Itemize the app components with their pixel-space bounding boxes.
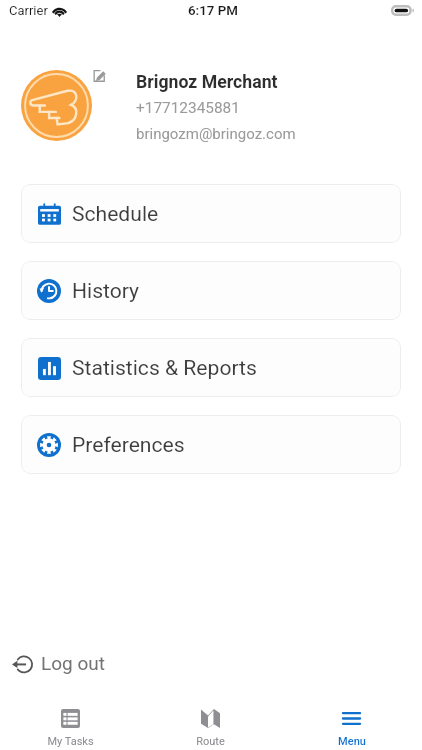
staticText: Brignoz Merchant (136, 72, 278, 93)
staticText: 6:17 PM (188, 3, 238, 19)
button[interactable]: Schedule (21, 184, 401, 243)
button[interactable]: My Tasks (0, 688, 140, 750)
button[interactable]: Menu (281, 688, 422, 750)
staticText: Schedule (72, 201, 159, 226)
button[interactable]: Statistics & Reports (21, 338, 401, 397)
button[interactable]: History (21, 261, 401, 320)
staticText: Route (196, 735, 225, 748)
staticText: Preferences (72, 432, 185, 457)
button[interactable]: Log out (0, 643, 422, 683)
staticText: My Tasks (47, 735, 94, 748)
staticText: Menu (338, 735, 366, 748)
staticText: Carrier (9, 3, 48, 18)
button[interactable]: Edit profile (92, 69, 106, 83)
button[interactable]: Route (140, 688, 281, 750)
staticText: History (72, 278, 140, 303)
staticText: Log out (41, 652, 105, 674)
button[interactable]: Preferences (21, 415, 401, 474)
staticText: +17712345881 (136, 99, 240, 117)
staticText: bringozm@bringoz.com (136, 125, 296, 143)
staticText: Statistics & Reports (72, 355, 257, 380)
